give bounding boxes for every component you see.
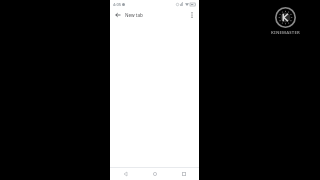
staticText: New tab	[125, 12, 143, 18]
button[interactable]: Recent apps	[177, 168, 190, 180]
staticText: 4:05	[113, 2, 121, 7]
button[interactable]: Home	[148, 168, 161, 180]
button[interactable]: Back	[119, 168, 132, 180]
staticText: KINEMASTER	[271, 30, 300, 36]
button[interactable]: Back	[113, 10, 122, 19]
button[interactable]: More options	[187, 10, 196, 19]
